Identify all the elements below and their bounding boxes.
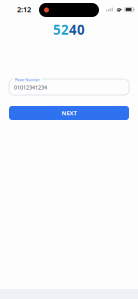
staticText: 52 <box>53 20 69 39</box>
staticText: 01012341234 <box>14 84 47 91</box>
staticText: NEXT <box>61 109 76 117</box>
button[interactable]: 01012341234 <box>9 79 129 95</box>
button[interactable]: NEXT <box>9 106 129 120</box>
staticText: 2:12 <box>17 4 31 14</box>
staticText: Phone Number <box>14 77 40 82</box>
staticText: 40 <box>69 20 85 39</box>
